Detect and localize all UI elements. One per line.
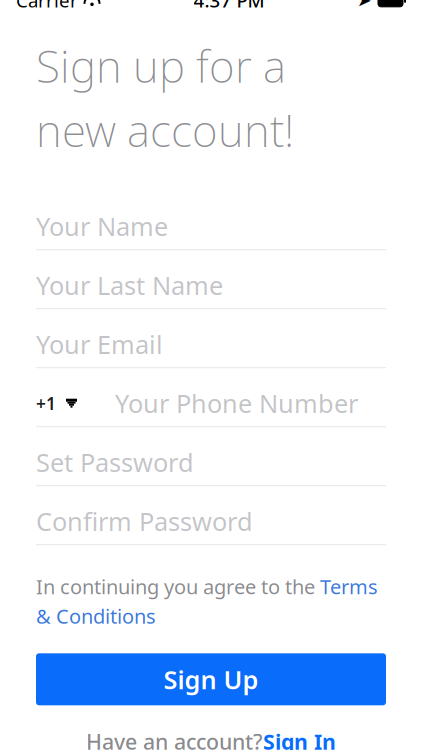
staticText: Sign Up [163,662,258,696]
staticText: Your Name [36,209,168,243]
button[interactable]: & Conditions [36,603,156,629]
staticText: ➤ [357,0,372,10]
staticText: Your Last Name [36,268,223,302]
staticText: Set Password [36,445,194,479]
staticText: Sign up for a [36,36,286,95]
staticText: new account! [36,101,294,159]
staticText: Sign In [263,727,336,750]
button[interactable]: Have an account? [0,727,422,750]
staticText: Your Email [36,327,163,361]
staticText: +1 [36,392,56,415]
staticText: Have an account? [86,727,263,750]
staticText: Your Phone Number [115,386,358,420]
button[interactable]: Sign Up [36,653,386,705]
staticText: 4:37 PM [193,0,264,13]
staticText: In continuing you agree to the [36,573,320,600]
staticText: Confirm Password [36,504,253,538]
staticText: Carrier [16,0,78,13]
staticText: & Conditions [36,603,156,629]
staticText: Terms [320,573,378,600]
button[interactable]: +1 [36,392,77,415]
button[interactable]: Terms [320,573,378,600]
